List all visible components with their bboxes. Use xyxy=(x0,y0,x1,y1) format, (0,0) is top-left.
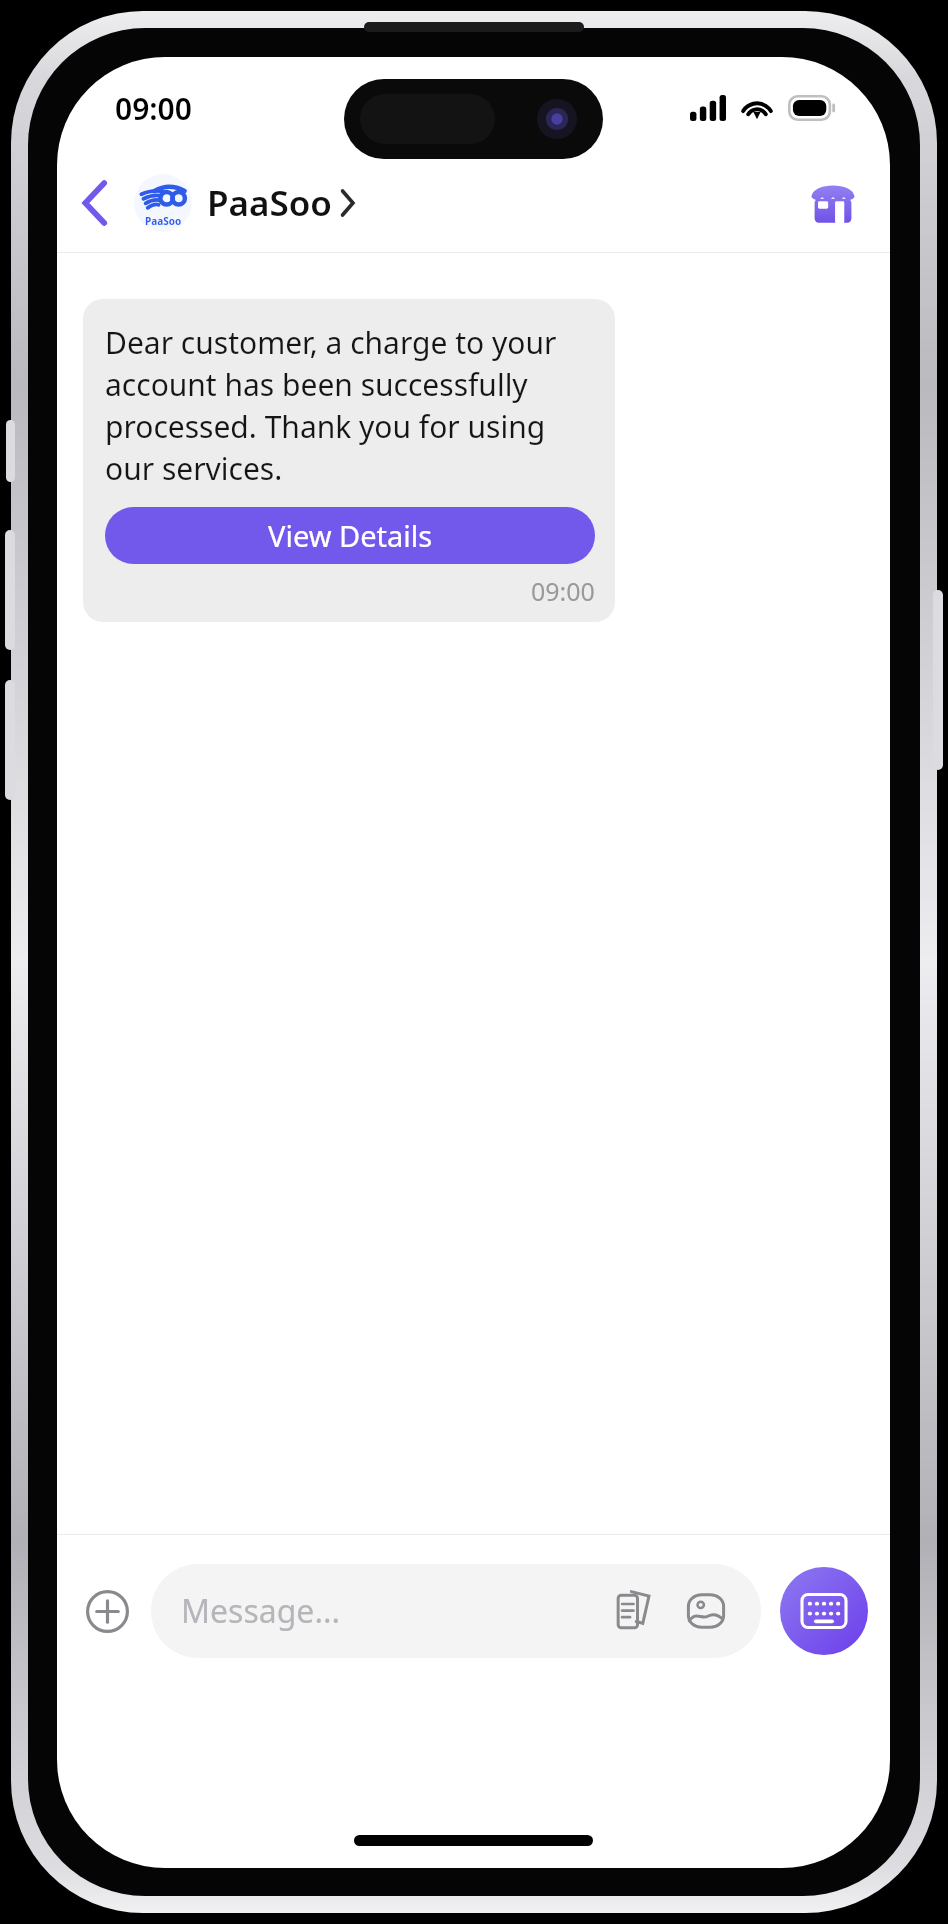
staticText: 09:00 xyxy=(531,574,595,608)
staticText: 09:00 xyxy=(115,88,192,129)
button[interactable]: Add attachment xyxy=(69,1573,145,1649)
staticText: PaaSoo xyxy=(145,214,182,228)
button[interactable]: Keyboard xyxy=(780,1567,868,1655)
staticText: View Details xyxy=(268,516,433,555)
button[interactable]: View Details xyxy=(105,507,595,564)
button[interactable]: Store xyxy=(800,170,866,236)
button[interactable]: PaaSoo xyxy=(133,173,354,233)
staticText: PaaSoo xyxy=(207,179,332,227)
button[interactable]: Templates xyxy=(601,1578,667,1644)
staticText: Message... xyxy=(181,1589,341,1633)
button[interactable]: Message... xyxy=(151,1564,761,1658)
button[interactable]: Back xyxy=(63,171,127,235)
button[interactable]: Send image xyxy=(673,1578,739,1644)
staticText: Dear customer, a charge to your account … xyxy=(105,322,595,489)
